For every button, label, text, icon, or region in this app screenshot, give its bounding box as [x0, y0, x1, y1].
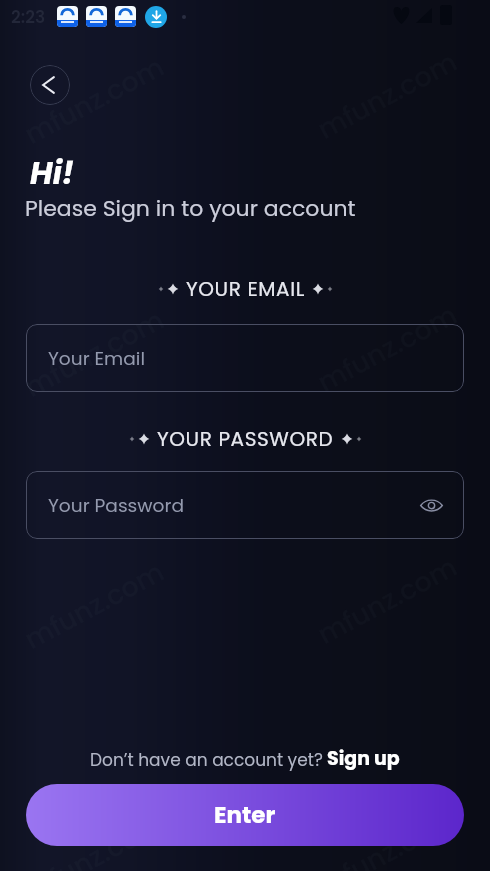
staticText: mfunz.com [311, 800, 464, 871]
staticText: Your Password [48, 492, 420, 518]
staticText: Enter [214, 799, 276, 831]
staticText: mfunz.com [18, 301, 171, 407]
staticText: Please Sign in to your account [25, 193, 356, 224]
staticText: YOUR EMAIL [186, 275, 305, 303]
button[interactable]: Back [30, 65, 70, 105]
staticText: 2:23 [11, 5, 46, 29]
button[interactable]: Your Password [26, 471, 464, 539]
button[interactable]: Enter [26, 784, 464, 846]
staticText: YOUR PASSWORD [157, 425, 334, 453]
button[interactable]: Sign up [327, 745, 400, 772]
staticText: Sign up [327, 745, 400, 772]
staticText: mfunz.com [311, 296, 464, 402]
staticText: mfunz.com [18, 48, 171, 154]
button[interactable]: Show password [420, 498, 443, 513]
staticText: mfunz.com [18, 805, 171, 871]
staticText: Your Email [48, 345, 443, 371]
staticText: Don’t have an account yet? [90, 748, 323, 772]
staticText: Hi! [30, 151, 74, 194]
button[interactable]: Your Email [26, 324, 464, 392]
